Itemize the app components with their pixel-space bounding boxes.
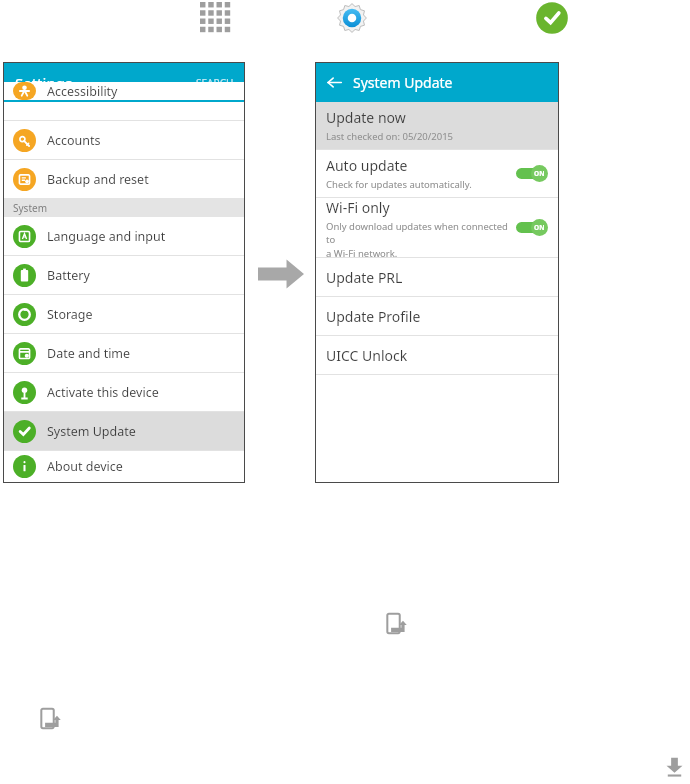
other: Device update [383,611,410,638]
button[interactable]: Settings [334,0,370,36]
staticText: System Update [353,73,453,92]
staticText: Check for updates automatically. [326,178,472,191]
button[interactable]: Backup and reset [4,160,244,198]
button[interactable]: Language and input [4,217,244,255]
staticText: Accounts [47,132,101,149]
button[interactable]: Apps [200,2,233,35]
button[interactable]: System Update [4,412,244,450]
button[interactable]: Update PRL [316,258,558,296]
staticText: Update Profile [326,307,421,326]
staticText: Update PRL [326,268,403,287]
button[interactable]: Battery [4,256,244,294]
staticText: ON [534,223,545,232]
staticText: System [13,201,47,215]
button[interactable]: Update now [316,102,558,149]
staticText: Settings [15,73,73,93]
button[interactable]: Storage [4,295,244,333]
button[interactable]: Back [316,63,558,102]
staticText: Auto update [326,156,408,175]
button[interactable]: Accessibility [4,82,244,100]
staticText: Wi-Fi only [326,198,390,217]
staticText: System Update [47,423,136,440]
staticText: Update now [326,108,406,127]
other: Device update [37,706,64,733]
staticText: SEARCH [196,76,234,90]
staticText: Backup and reset [47,171,149,188]
staticText: Activate this device [47,384,159,401]
button[interactable]: Activate this device [4,373,244,411]
button[interactable]: Update Profile [316,297,558,335]
button[interactable]: System Update [534,0,570,36]
other: Back [326,74,343,91]
staticText: ON [534,169,545,178]
button[interactable]: UICC Unlock [316,336,558,374]
staticText: Storage [47,306,93,323]
button[interactable]: About device [4,451,244,482]
staticText: Accessibility [47,83,118,100]
staticText: Date and time [47,345,131,362]
staticText: Last checked on: 05/20/2015 [326,130,454,143]
staticText: Battery [47,267,90,284]
staticText: UICC Unlock [326,346,408,365]
button[interactable]: Settings [4,63,244,102]
button[interactable]: Date and time [4,334,244,372]
staticText: Language and input [47,228,166,245]
staticText: a Wi-Fi network. [326,247,398,257]
staticText: Only download updates when connected to [326,220,516,246]
button[interactable]: Accounts [4,121,244,159]
staticText: About device [47,458,123,475]
other: Download [664,756,685,777]
button[interactable]: Wi-Fi only [316,198,558,257]
button[interactable]: Auto update [316,150,558,197]
